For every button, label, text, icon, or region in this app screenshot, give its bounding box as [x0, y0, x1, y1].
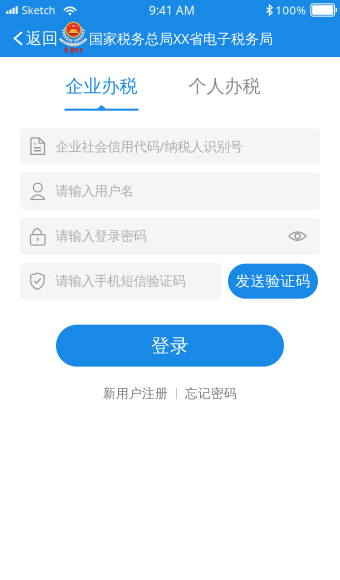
button[interactable]: 个人办税 [163, 75, 286, 111]
staticText: 新用户注册 [103, 386, 168, 402]
staticText: 企业办税 [65, 75, 137, 98]
staticText: 9:41 AM [149, 2, 195, 18]
button[interactable]: 忘记密码 [185, 386, 237, 402]
button[interactable]: 显示密码 [276, 221, 307, 252]
staticText: 请输入用户名 [55, 183, 133, 200]
button[interactable]: 发送验证码 [228, 264, 318, 299]
staticText: 100% [275, 2, 306, 18]
button[interactable]: 返回 [0, 20, 59, 57]
staticText: 忘记密码 [185, 386, 237, 402]
staticText: 登录 [151, 334, 189, 357]
staticText: 请输入登录密码 [55, 228, 146, 245]
staticText: 发送验证码 [235, 272, 310, 290]
staticText: Sketch [21, 3, 55, 17]
button[interactable]: 登录 [56, 325, 284, 367]
staticText: 返回 [26, 28, 58, 49]
staticText: 企业社会信用代码/纳税人识别号 [55, 137, 242, 155]
staticText: 个人办税 [188, 75, 260, 98]
staticText: 请输入手机短信验证码 [55, 273, 185, 290]
button[interactable]: 新用户注册 [103, 386, 168, 402]
button[interactable]: 企业办税 [40, 75, 163, 111]
staticText: 国家税务总局XX省电子税务局 [89, 29, 273, 48]
